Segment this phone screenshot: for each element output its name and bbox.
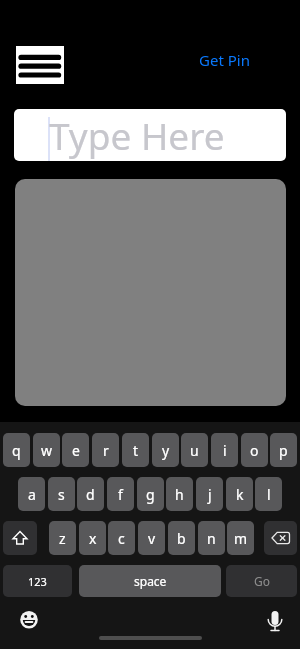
staticText: space: [134, 573, 167, 589]
button[interactable]: n: [198, 521, 225, 555]
button[interactable]: [18, 609, 40, 631]
staticText: a: [28, 485, 36, 504]
button[interactable]: z: [49, 521, 76, 555]
staticText: z: [59, 529, 66, 548]
staticText: Go: [254, 573, 270, 589]
staticText: i: [223, 441, 227, 460]
button[interactable]: v: [138, 521, 165, 555]
button[interactable]: k: [226, 477, 253, 511]
button[interactable]: r: [92, 433, 119, 467]
staticText: w: [41, 441, 53, 460]
staticText: c: [118, 529, 125, 548]
staticText: s: [58, 485, 65, 504]
button[interactable]: i: [211, 433, 238, 467]
button[interactable]: y: [152, 433, 179, 467]
button[interactable]: p: [270, 433, 297, 467]
button[interactable]: f: [107, 477, 134, 511]
staticText: o: [250, 441, 259, 460]
button[interactable]: c: [108, 521, 135, 555]
staticText: g: [146, 485, 155, 504]
button[interactable]: s: [48, 477, 75, 511]
staticText: t: [133, 441, 139, 460]
button[interactable]: [16, 46, 64, 84]
staticText: 123: [28, 574, 47, 589]
staticText: Type Here: [49, 110, 225, 160]
button[interactable]: [264, 607, 286, 634]
staticText: q: [12, 441, 21, 460]
button[interactable]: Get Pin: [195, 46, 254, 74]
button[interactable]: b: [168, 521, 195, 555]
staticText: y: [162, 441, 170, 460]
staticText: e: [72, 441, 80, 460]
staticText: u: [190, 441, 199, 460]
staticText: v: [148, 529, 156, 548]
staticText: Get Pin: [199, 50, 250, 70]
staticText: l: [267, 485, 271, 504]
button[interactable]: w: [33, 433, 60, 467]
button[interactable]: t: [122, 433, 149, 467]
staticText: r: [103, 441, 109, 460]
staticText: p: [279, 441, 288, 460]
button[interactable]: u: [181, 433, 208, 467]
button[interactable]: l: [255, 477, 282, 511]
button[interactable]: Go: [226, 565, 297, 597]
staticText: x: [89, 529, 97, 548]
button[interactable]: x: [79, 521, 106, 555]
button[interactable]: e: [62, 433, 89, 467]
button[interactable]: a: [18, 477, 45, 511]
staticText: b: [177, 529, 186, 548]
button[interactable]: [264, 521, 297, 555]
button[interactable]: space: [79, 565, 221, 597]
button[interactable]: q: [3, 433, 30, 467]
button[interactable]: g: [137, 477, 164, 511]
staticText: n: [207, 529, 216, 548]
staticText: f: [118, 485, 123, 504]
staticText: m: [234, 529, 248, 548]
button[interactable]: j: [196, 477, 223, 511]
staticText: d: [86, 485, 95, 504]
button[interactable]: 123: [3, 565, 72, 597]
staticText: j: [208, 485, 212, 504]
button[interactable]: [3, 521, 37, 555]
button[interactable]: h: [166, 477, 193, 511]
button[interactable]: m: [227, 521, 254, 555]
button[interactable]: o: [241, 433, 268, 467]
staticText: h: [175, 485, 184, 504]
button[interactable]: d: [77, 477, 104, 511]
staticText: k: [236, 485, 244, 504]
button[interactable]: Type Here: [14, 109, 286, 161]
